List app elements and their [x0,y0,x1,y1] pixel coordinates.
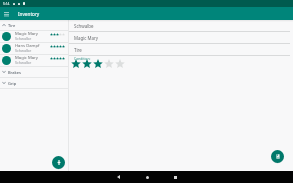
button[interactable]: Open navigation menu [0,7,13,20]
button[interactable]: Rate 4 stars [103,58,114,69]
button[interactable]: Tire [0,20,68,30]
staticText: Inventory [18,11,40,17]
button[interactable]: Tire [69,44,293,55]
button[interactable]: Rate 5 stars [114,58,125,69]
staticText: Hans Dampf [15,43,40,49]
staticText: Grip [8,81,17,86]
button[interactable]: Add item [52,156,65,169]
button[interactable]: Rate 1 stars [70,58,81,69]
staticText: Magic Mary [74,35,99,41]
button[interactable]: Magic Mary [69,32,293,43]
staticText: Tire [8,23,16,28]
staticText: Tire [74,47,82,53]
button[interactable]: Back [112,171,125,183]
staticText: Schwalbe [15,48,32,53]
staticText: Schwalbe [74,23,94,29]
staticText: Magic Mary [15,31,38,37]
button[interactable]: Hans Dampf [0,43,68,54]
button[interactable]: Rate 3 stars [92,58,103,69]
staticText: 5:14 [3,2,10,6]
button[interactable]: Home [141,171,154,183]
staticText: Schwalbe [15,36,32,41]
button[interactable]: Save [271,150,284,163]
staticText: Magic Mary [15,55,38,61]
staticText: Condition: [74,56,91,61]
button[interactable]: Grip [0,78,68,88]
button[interactable]: Recent apps [169,171,182,183]
button[interactable]: Rate 2 stars [81,58,92,69]
button[interactable]: Brakes [0,67,68,77]
button[interactable]: Magic Mary [0,55,68,66]
button[interactable]: Magic Mary [0,31,68,42]
button[interactable]: Schwalbe [69,20,293,31]
staticText: Brakes [8,70,21,75]
staticText: Schwalbe [15,60,32,65]
